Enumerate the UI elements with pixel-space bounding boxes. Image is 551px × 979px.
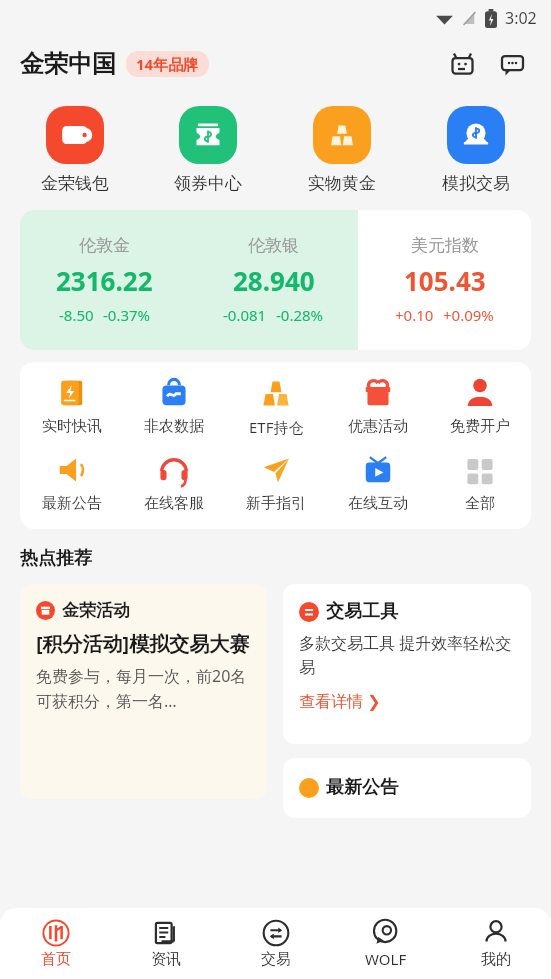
button[interactable]: 非农数据	[123, 376, 225, 436]
button[interactable]: 机器人客服	[443, 45, 481, 83]
button[interactable]: 伦敦金	[20, 210, 189, 350]
staticText: 优惠活动	[348, 417, 408, 436]
staticText: 金荣钱包	[41, 173, 109, 194]
staticText: 资讯	[151, 950, 181, 969]
staticText: -8.50	[59, 305, 94, 325]
button[interactable]: 优惠活动	[327, 376, 429, 436]
staticText: 免费开户	[450, 417, 510, 436]
button[interactable]: 在线互动	[327, 453, 429, 513]
staticText: 3:02	[505, 7, 537, 29]
staticText: [积分活动]模拟交易大赛	[36, 630, 250, 657]
staticText: 查看详情 ❯	[299, 690, 381, 712]
staticText: -0.37%	[103, 305, 151, 325]
button[interactable]: 全部	[429, 453, 531, 513]
button[interactable]: 资讯	[111, 908, 221, 979]
button[interactable]: 交易	[221, 908, 331, 979]
button[interactable]: 我的	[441, 908, 551, 979]
staticText: WOLF	[365, 949, 407, 969]
button[interactable]: 模拟交易	[409, 102, 543, 198]
staticText: 实物黄金	[308, 173, 376, 194]
button[interactable]: 新手指引	[225, 453, 327, 513]
button[interactable]: 首页	[0, 908, 111, 979]
button[interactable]: 在线客服	[123, 453, 225, 513]
staticText: 首页	[41, 950, 71, 969]
staticText: 最新公告	[326, 776, 398, 799]
button[interactable]: 伦敦银	[189, 210, 358, 350]
staticText: 105.43	[404, 263, 486, 298]
staticText: 全部	[465, 494, 495, 513]
staticText: 在线互动	[348, 494, 408, 513]
button[interactable]: 免费开户	[429, 376, 531, 436]
staticText: 2316.22	[56, 263, 153, 298]
staticText: 模拟交易	[442, 173, 510, 194]
staticText: 在线客服	[144, 494, 204, 513]
staticText: -0.081	[223, 305, 267, 325]
staticText: +0.10	[395, 305, 434, 325]
staticText: 14年品牌	[136, 54, 199, 74]
button[interactable]: 最新公告	[283, 758, 531, 818]
staticText: 伦敦金	[79, 235, 130, 256]
button[interactable]: 实物黄金	[275, 102, 409, 198]
staticText: 热点推荐	[20, 547, 92, 570]
staticText: ETF持仓	[249, 417, 304, 437]
staticText: 实时快讯	[42, 417, 102, 436]
staticText: 非农数据	[144, 417, 204, 436]
button[interactable]: 金荣活动	[20, 584, 267, 799]
button[interactable]: 实时快讯	[20, 376, 123, 436]
staticText: 金荣中国	[20, 49, 116, 79]
staticText: 28.940	[233, 263, 315, 298]
staticText: 美元指数	[411, 235, 479, 256]
button[interactable]: 美元指数	[358, 210, 531, 350]
staticText: 交易	[261, 950, 291, 969]
staticText: 领券中心	[174, 173, 242, 194]
staticText: 多款交易工具 提升效率轻松交易	[299, 632, 515, 678]
button[interactable]: 交易工具	[283, 584, 531, 744]
button[interactable]: 最新公告	[20, 453, 123, 513]
button[interactable]: 领券中心	[141, 102, 275, 198]
staticText: -0.28%	[276, 305, 324, 325]
staticText: 交易工具	[326, 600, 398, 623]
button[interactable]: ETF持仓	[225, 376, 327, 437]
button[interactable]: 金荣钱包	[8, 102, 141, 198]
staticText: 金荣活动	[62, 600, 130, 621]
staticText: 免费参与，每月一次，前20名可获积分，第一名…	[36, 665, 251, 712]
staticText: 新手指引	[246, 494, 306, 513]
staticText: 最新公告	[42, 494, 102, 513]
staticText: 我的	[481, 950, 511, 969]
button[interactable]: WOLF	[331, 908, 441, 979]
staticText: +0.09%	[443, 305, 494, 325]
staticText: 伦敦银	[248, 235, 299, 256]
button[interactable]: 消息	[493, 45, 531, 83]
